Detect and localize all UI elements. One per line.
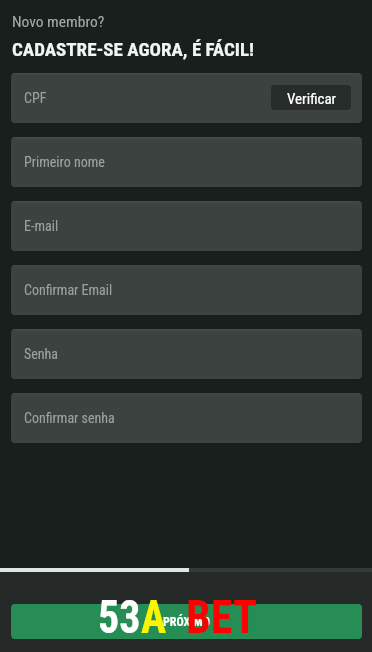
- staticText: A: [141, 589, 167, 644]
- button[interactable]: E-mail: [11, 201, 362, 251]
- button[interactable]: Verificar: [271, 85, 351, 110]
- staticText: Senha: [24, 346, 59, 362]
- staticText: Primeiro nome: [24, 154, 105, 170]
- button[interactable]: Senha: [11, 329, 362, 379]
- staticText: BET: [186, 589, 257, 644]
- staticText: 53: [98, 589, 141, 644]
- button[interactable]: Confirmar senha: [11, 393, 362, 443]
- staticText: E-mail: [24, 218, 59, 234]
- button[interactable]: PRÓXIMO: [11, 604, 362, 639]
- staticText: CADASTRE-SE AGORA, É FÁCIL!: [12, 38, 255, 60]
- staticText: CPF: [24, 90, 47, 106]
- staticText: Verificar: [287, 90, 337, 108]
- staticText: Confirmar senha: [24, 410, 115, 426]
- button[interactable]: CPF: [11, 73, 362, 123]
- staticText: PRÓXIMO: [163, 615, 210, 629]
- staticText: Novo membro?: [12, 13, 105, 31]
- button[interactable]: Confirmar Email: [11, 265, 362, 315]
- other: 53A BET logo: [98, 589, 167, 644]
- staticText: Confirmar Email: [24, 282, 113, 298]
- button[interactable]: Primeiro nome: [11, 137, 362, 187]
